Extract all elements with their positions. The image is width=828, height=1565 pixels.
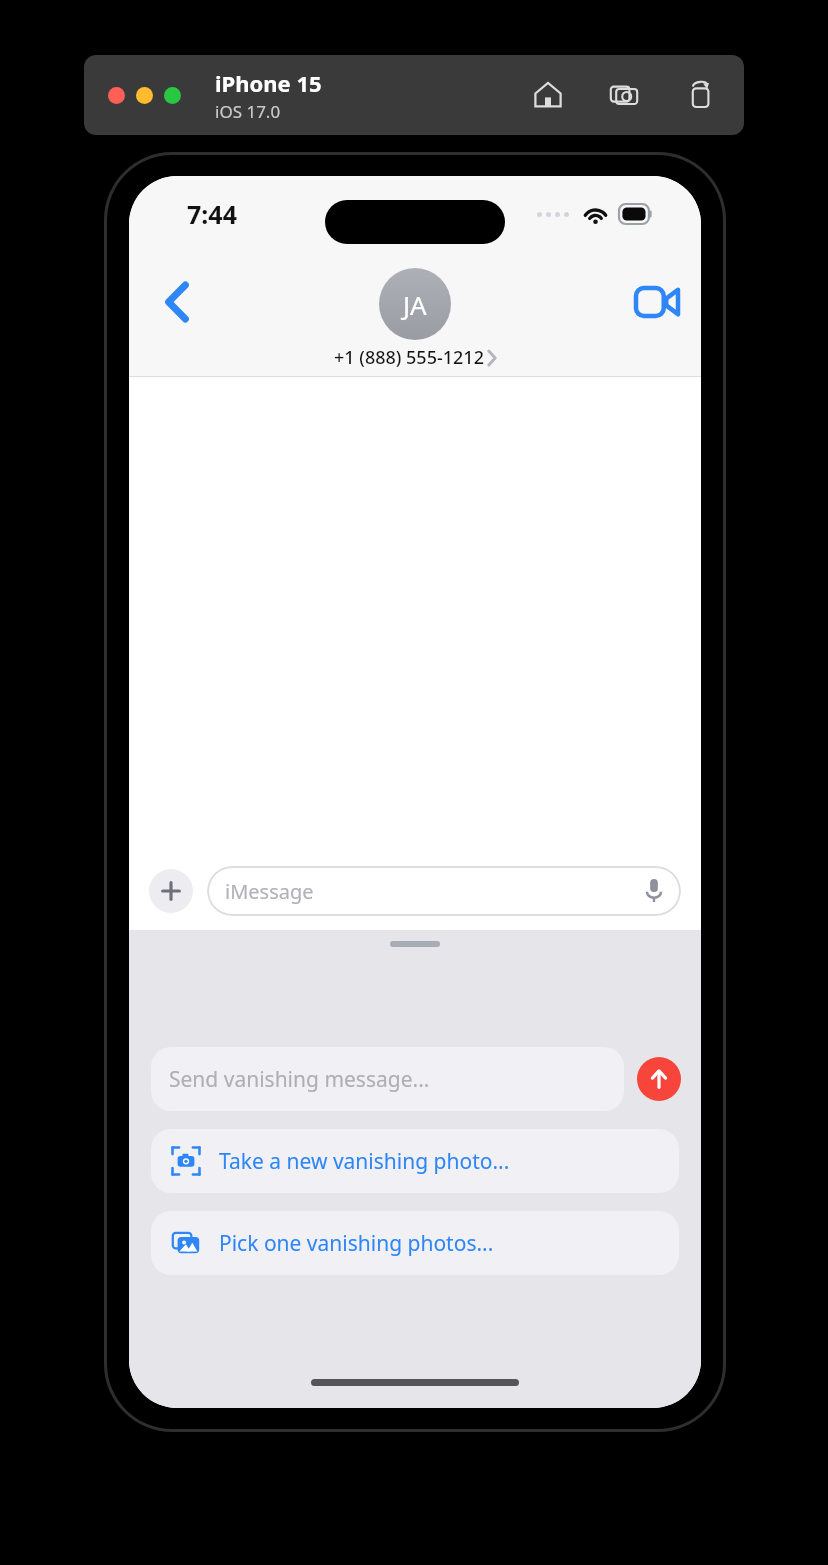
staticText: Pick one vanishing photos...: [219, 1229, 494, 1258]
button[interactable]: JA: [334, 268, 496, 370]
staticText: +1 (888) 555-1212: [334, 345, 484, 370]
button[interactable]: Add attachment: [149, 869, 193, 913]
staticText: iPhone 15: [215, 68, 322, 98]
staticText: Send vanishing message...: [169, 1065, 430, 1094]
button[interactable]: Send vanishing message...: [151, 1047, 624, 1111]
button[interactable]: Screenshot: [606, 77, 642, 113]
button[interactable]: Back: [149, 274, 205, 330]
button[interactable]: Minimize: [136, 87, 153, 104]
button[interactable]: Send: [637, 1057, 681, 1101]
button[interactable]: Close: [108, 87, 125, 104]
button[interactable]: Dictate: [641, 878, 667, 904]
button[interactable]: Rotate: [682, 77, 718, 113]
staticText: Take a new vanishing photo...: [219, 1147, 510, 1176]
button[interactable]: Home: [530, 77, 566, 113]
button[interactable]: Take a new vanishing photo...: [151, 1129, 679, 1193]
button[interactable]: Pick one vanishing photos...: [151, 1211, 679, 1275]
button[interactable]: iMessage: [207, 866, 681, 916]
staticText: iMessage: [225, 878, 314, 905]
staticText: 7:44: [187, 197, 237, 231]
button[interactable]: FaceTime video call: [629, 274, 685, 330]
staticText: iOS 17.0: [215, 100, 281, 123]
staticText: JA: [403, 287, 427, 322]
button[interactable]: Zoom: [164, 87, 181, 104]
